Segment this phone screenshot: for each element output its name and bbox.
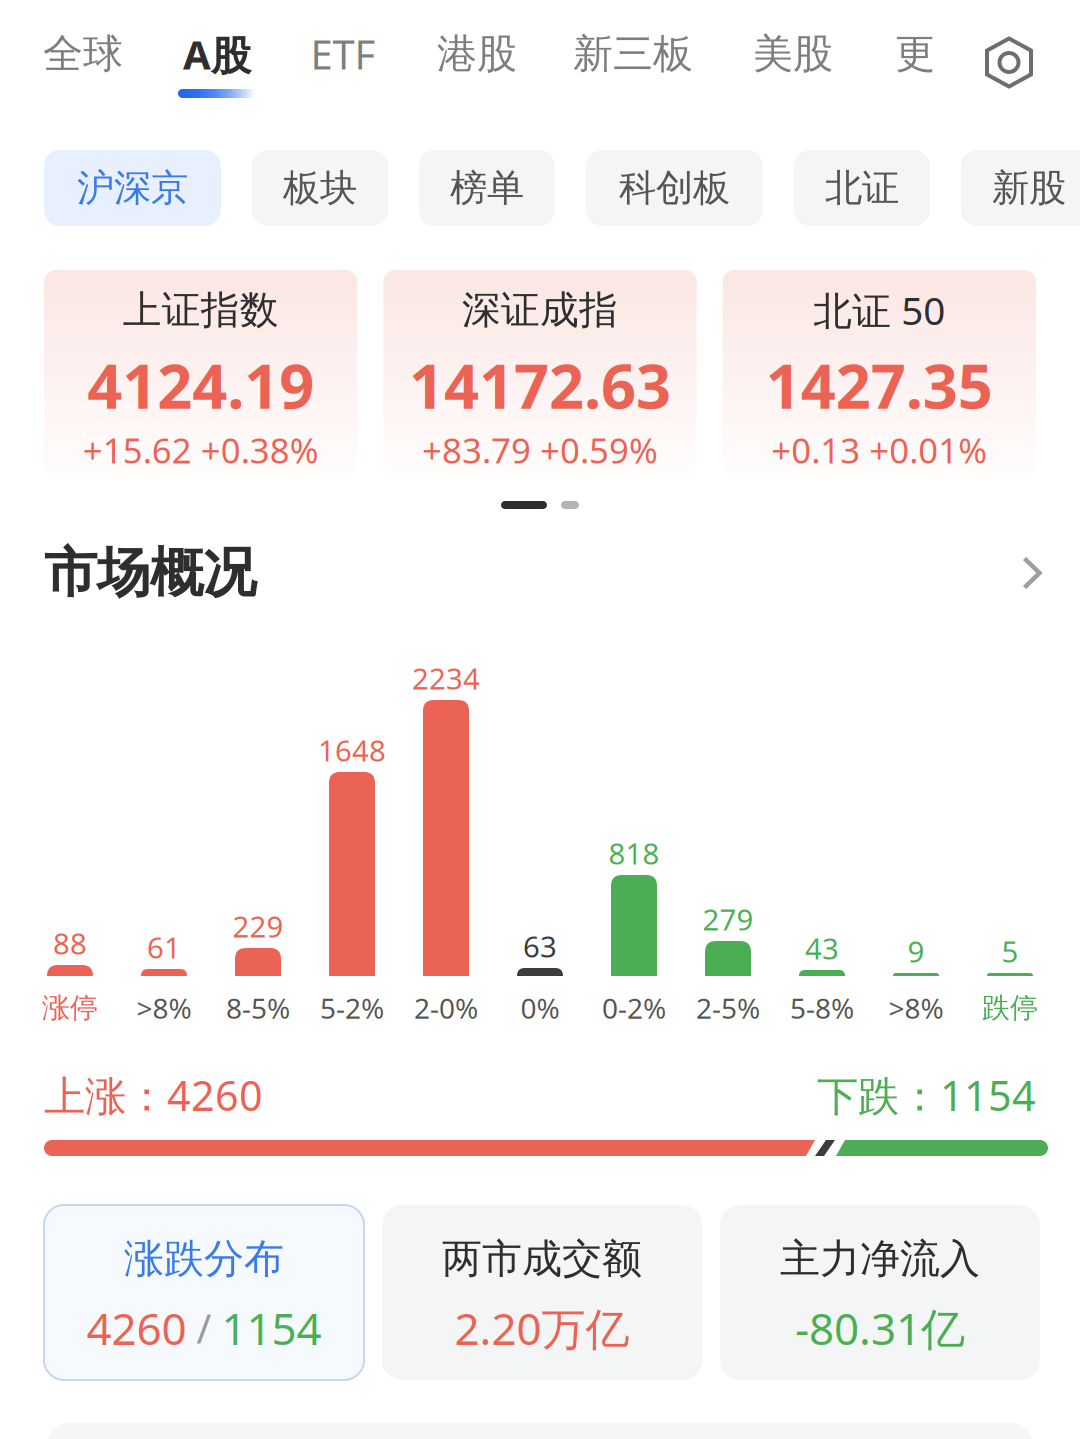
staticText: 4124.19 — [87, 344, 314, 426]
button[interactable]: 北证 — [794, 150, 930, 226]
staticText: ETF — [310, 27, 375, 80]
staticText: 榜单 — [450, 165, 524, 211]
staticText: -80.31亿 — [795, 1299, 965, 1357]
staticText: +83.79 +0.59% — [422, 427, 658, 473]
button[interactable]: 科创板 — [586, 150, 763, 226]
staticText: +15.62 +0.38% — [83, 427, 319, 473]
staticText: >8% — [136, 989, 191, 1027]
staticText: / — [196, 1301, 211, 1354]
button[interactable]: 全球 — [42, 27, 124, 98]
staticText: +0.13 +0.01% — [771, 427, 987, 473]
button[interactable]: 主力净流入 — [720, 1205, 1040, 1380]
staticText: 63 — [523, 926, 557, 965]
staticText: 1154 — [221, 1299, 321, 1357]
staticText: 上涨：4260 — [44, 1068, 263, 1122]
staticText: 88 — [53, 923, 87, 962]
staticText: A股 — [183, 27, 251, 81]
staticText: 上证指数 — [123, 286, 279, 334]
staticText: >8% — [888, 989, 943, 1027]
button[interactable]: 板块 — [252, 150, 388, 226]
staticText: 跌停 — [982, 991, 1038, 1025]
button[interactable]: A股 — [180, 27, 254, 98]
staticText: 深证成指 — [462, 286, 618, 334]
staticText: 2-5% — [696, 989, 760, 1027]
staticText: 8-5% — [226, 989, 290, 1027]
button[interactable]: 北证 50 — [723, 270, 1036, 476]
staticText: 沪深京 — [77, 165, 188, 211]
staticText: 61 — [147, 927, 181, 966]
button[interactable]: 两市成交额 — [382, 1205, 702, 1380]
staticText: 818 — [608, 833, 659, 872]
staticText: 美股 — [753, 29, 833, 78]
button[interactable]: 美股 — [752, 27, 834, 98]
staticText: 更 — [895, 29, 935, 78]
button[interactable]: 沪深京 — [44, 150, 221, 226]
staticText: 主力净流入 — [780, 1234, 980, 1283]
button[interactable]: 港股 — [436, 27, 518, 98]
staticText: 下跌：1154 — [817, 1068, 1036, 1122]
staticText: 市场概况 — [44, 540, 256, 606]
button[interactable]: 新股 — [961, 150, 1080, 226]
staticText: 4260 — [86, 1299, 186, 1357]
staticText: 全球 — [43, 29, 123, 78]
button[interactable]: 榜单 — [419, 150, 555, 226]
button[interactable]: ETF — [308, 27, 378, 98]
staticText: 北证 — [825, 165, 899, 211]
button[interactable]: 更 — [894, 27, 936, 98]
staticText: 0% — [520, 989, 559, 1027]
staticText: 科创板 — [619, 165, 730, 211]
staticText: 43 — [805, 928, 839, 967]
staticText: 14172.63 — [409, 344, 671, 426]
button[interactable]: 上证指数 — [44, 270, 357, 476]
staticText: 2234 — [412, 658, 480, 697]
staticText: 1648 — [318, 730, 386, 769]
staticText: 两市成交额 — [442, 1234, 642, 1283]
button[interactable]: 新三板 — [572, 27, 694, 98]
staticText: 港股 — [437, 29, 517, 78]
button[interactable]: 涨跌分布 — [44, 1205, 364, 1380]
button[interactable]: 深证成指 — [383, 270, 697, 476]
staticText: 涨停 — [42, 991, 98, 1025]
staticText: 279 — [702, 899, 753, 938]
staticText: 新三板 — [573, 29, 693, 78]
staticText: 5-2% — [320, 989, 384, 1027]
staticText: 0-2% — [602, 989, 666, 1027]
staticText: 5 — [1001, 931, 1018, 970]
staticText: 2.20万亿 — [454, 1299, 629, 1357]
staticText: 229 — [232, 906, 283, 945]
staticText: 1427.35 — [766, 344, 993, 426]
button[interactable]: Settings — [982, 35, 1036, 89]
staticText: 新股 — [992, 165, 1066, 211]
staticText: 涨跌分布 — [124, 1234, 284, 1283]
staticText: 5-8% — [790, 989, 854, 1027]
staticText: 板块 — [283, 165, 357, 211]
staticText: 北证 50 — [813, 284, 945, 336]
staticText: 2-0% — [414, 989, 478, 1027]
button[interactable]: 市场概况 — [0, 537, 1080, 609]
staticText: 9 — [907, 931, 924, 970]
